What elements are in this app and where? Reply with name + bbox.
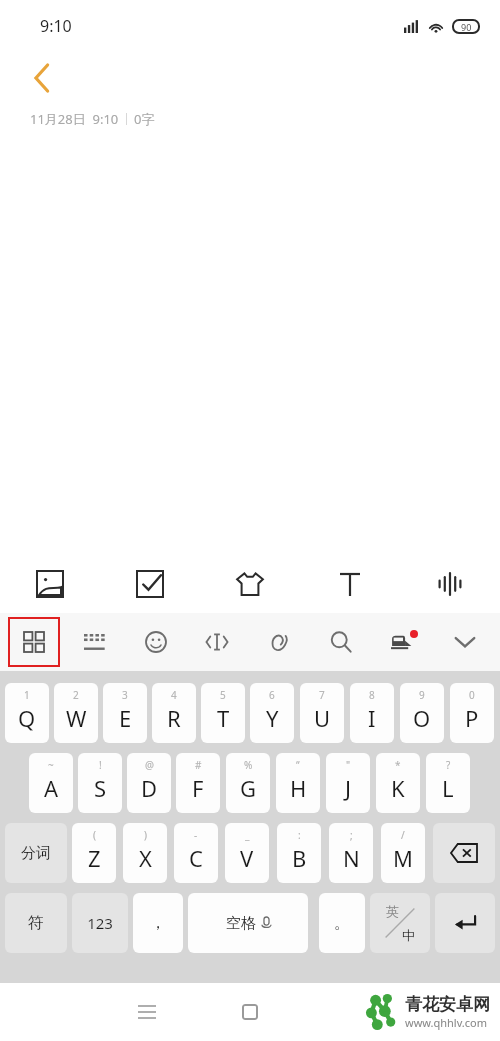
button[interactable]: 符 — [5, 893, 67, 953]
staticText: ? — [446, 758, 451, 772]
staticText: ( — [93, 828, 96, 842]
staticText: # — [195, 758, 202, 772]
button[interactable]: Style — [200, 555, 300, 613]
button[interactable]: O — [400, 683, 444, 743]
button[interactable]: B — [277, 823, 321, 883]
staticText: 中 — [402, 927, 415, 943]
staticText: ) — [144, 828, 147, 842]
button[interactable]: C — [174, 823, 218, 883]
button[interactable]: Emoji — [125, 613, 186, 671]
staticText: 0 — [469, 688, 475, 702]
button[interactable]: V — [225, 823, 269, 883]
staticText: - — [194, 828, 198, 842]
staticText: 。 — [334, 913, 350, 933]
button[interactable]: 。 — [319, 893, 365, 953]
staticText: 2 — [73, 688, 79, 702]
staticText: 空格 — [226, 914, 256, 933]
staticText: 7 — [319, 688, 325, 702]
staticText: B — [292, 843, 307, 873]
staticText: 0字 — [134, 110, 155, 128]
button[interactable]: U — [300, 683, 344, 743]
button[interactable]: P — [450, 683, 494, 743]
staticText: D — [141, 773, 158, 803]
button[interactable]: Enter — [435, 893, 495, 953]
staticText: 9:10 — [40, 15, 72, 37]
staticText: 3 — [122, 688, 128, 702]
button[interactable]: Backspace — [433, 823, 495, 883]
staticText: R — [167, 703, 181, 733]
staticText: Z — [88, 843, 101, 873]
staticText: K — [391, 773, 405, 803]
staticText: " — [346, 758, 351, 772]
button[interactable]: E — [103, 683, 147, 743]
button[interactable]: Insert image — [0, 555, 100, 613]
staticText: ; — [350, 828, 353, 842]
button[interactable]: Z — [72, 823, 116, 883]
staticText: 6 — [269, 688, 275, 702]
staticText: I — [368, 703, 376, 733]
button[interactable]: J — [326, 753, 370, 813]
staticText: 5 — [220, 688, 226, 702]
button[interactable]: X — [123, 823, 167, 883]
button[interactable]: K — [376, 753, 420, 813]
staticText: / — [401, 828, 405, 842]
button[interactable]: ， — [133, 893, 183, 953]
button[interactable]: 分词 — [5, 823, 67, 883]
button[interactable]: I — [350, 683, 394, 743]
button[interactable]: Skin — [372, 613, 434, 671]
button[interactable]: Search — [310, 613, 372, 671]
button[interactable]: Hide keyboard — [434, 613, 496, 671]
button[interactable]: Back — [22, 58, 62, 98]
staticText: X — [139, 843, 152, 873]
staticText: E — [119, 703, 132, 733]
button[interactable]: G — [226, 753, 270, 813]
button[interactable]: Q — [5, 683, 49, 743]
staticText: _ — [245, 828, 250, 842]
button[interactable]: N — [329, 823, 373, 883]
button[interactable]: Panel — [8, 617, 60, 667]
staticText: www.qhhlv.com — [405, 1015, 487, 1030]
staticText: V — [240, 843, 254, 873]
button[interactable]: 空格 — [188, 893, 308, 953]
staticText: L — [442, 773, 454, 803]
button[interactable]: Home — [228, 990, 272, 1034]
button[interactable]: S — [78, 753, 122, 813]
button[interactable]: L — [426, 753, 470, 813]
button[interactable]: Voice — [400, 555, 500, 613]
staticText: A — [44, 773, 59, 803]
staticText: 11月28日 9:10 — [30, 110, 119, 128]
staticText: : — [298, 828, 301, 842]
staticText: 9 — [419, 688, 425, 702]
staticText: F — [192, 773, 204, 803]
staticText: M — [393, 843, 413, 873]
staticText: Q — [18, 703, 36, 733]
button[interactable]: A — [29, 753, 73, 813]
button[interactable]: F — [176, 753, 220, 813]
button[interactable]: D — [127, 753, 171, 813]
staticText: ， — [150, 913, 166, 933]
button[interactable]: 123 — [72, 893, 128, 953]
button[interactable]: Cursor — [186, 613, 248, 671]
button[interactable]: M — [381, 823, 425, 883]
staticText: S — [94, 773, 107, 803]
button[interactable]: W — [54, 683, 98, 743]
staticText: C — [189, 843, 203, 873]
button[interactable]: R — [152, 683, 196, 743]
button[interactable]: T — [201, 683, 245, 743]
staticText: 8 — [369, 688, 375, 702]
button[interactable]: Recents — [125, 990, 169, 1034]
staticText: @ — [145, 758, 154, 772]
staticText: T — [217, 703, 230, 733]
button[interactable]: Keyboard — [64, 613, 125, 671]
staticText: ! — [99, 758, 102, 772]
staticText: P — [465, 703, 479, 733]
staticText: 英 — [386, 903, 399, 919]
button[interactable]: Text format — [300, 555, 400, 613]
button[interactable]: Y — [250, 683, 294, 743]
button[interactable]: Clipboard — [248, 613, 310, 671]
staticText: 4 — [171, 688, 177, 702]
button[interactable]: Checklist — [100, 555, 200, 613]
button[interactable]: 英中 — [370, 893, 430, 953]
staticText: * — [395, 758, 401, 772]
button[interactable]: H — [276, 753, 320, 813]
